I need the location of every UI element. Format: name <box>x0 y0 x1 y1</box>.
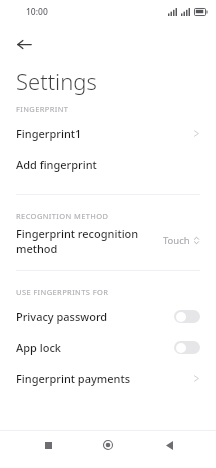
button[interactable]: Recents <box>35 432 61 458</box>
staticText: Privacy password <box>16 309 174 324</box>
button[interactable]: Back <box>8 28 40 60</box>
staticText: 10:00 <box>26 6 48 18</box>
staticText: FINGERPRINT <box>16 104 69 114</box>
button[interactable]: Privacy password <box>0 301 216 332</box>
staticText: Touch <box>163 234 190 247</box>
button[interactable]: Fingerprint1 <box>0 118 216 149</box>
staticText: Settings <box>16 66 97 96</box>
staticText: USE FINGERPRINTS FOR <box>16 287 109 297</box>
staticText: Add fingerprint <box>16 157 200 172</box>
staticText: Fingerprint recognition method <box>16 226 163 256</box>
staticText: RECOGNITION METHOD <box>16 211 109 221</box>
staticText: Fingerprint payments <box>16 371 193 386</box>
button[interactable]: Fingerprint recognition method <box>0 225 216 256</box>
other: Toggle <box>174 341 200 354</box>
staticText: Fingerprint1 <box>16 126 193 141</box>
button[interactable]: Back <box>156 432 182 458</box>
other: Toggle <box>174 310 200 323</box>
button[interactable]: Home <box>95 432 121 458</box>
button[interactable]: Fingerprint payments <box>0 363 216 394</box>
button[interactable]: App lock <box>0 332 216 363</box>
staticText: App lock <box>16 340 174 355</box>
button[interactable]: Add fingerprint <box>0 149 216 180</box>
